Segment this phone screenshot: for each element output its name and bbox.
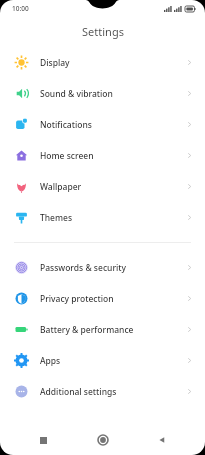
button[interactable]: Notifications: [0, 109, 205, 140]
staticText: Apps: [40, 355, 61, 367]
staticText: Themes: [40, 212, 73, 224]
staticText: Battery & performance: [40, 324, 134, 336]
staticText: Display: [40, 57, 70, 69]
button[interactable]: Apps: [0, 345, 205, 376]
staticText: Wallpaper: [40, 181, 82, 193]
staticText: Additional settings: [40, 386, 117, 398]
button[interactable]: Additional settings: [0, 376, 205, 407]
staticText: Privacy protection: [40, 293, 114, 305]
button[interactable]: Passwords & security: [0, 252, 205, 283]
staticText: Notifications: [40, 119, 92, 131]
button[interactable]: Privacy protection: [0, 283, 205, 314]
button[interactable]: Battery & performance: [0, 314, 205, 345]
staticText: Settings: [82, 24, 124, 39]
button[interactable]: Home screen: [0, 140, 205, 171]
button[interactable]: Home: [86, 425, 120, 455]
button[interactable]: Wallpaper: [0, 171, 205, 202]
staticText: Home screen: [40, 150, 94, 162]
button[interactable]: Themes: [0, 202, 205, 233]
staticText: Passwords & security: [40, 262, 127, 274]
staticText: 10:00: [12, 4, 29, 13]
staticText: Sound & vibration: [40, 88, 113, 100]
button[interactable]: Sound & vibration: [0, 78, 205, 109]
button[interactable]: Back: [145, 425, 179, 455]
button[interactable]: Recents: [26, 425, 60, 455]
button[interactable]: Display: [0, 47, 205, 78]
